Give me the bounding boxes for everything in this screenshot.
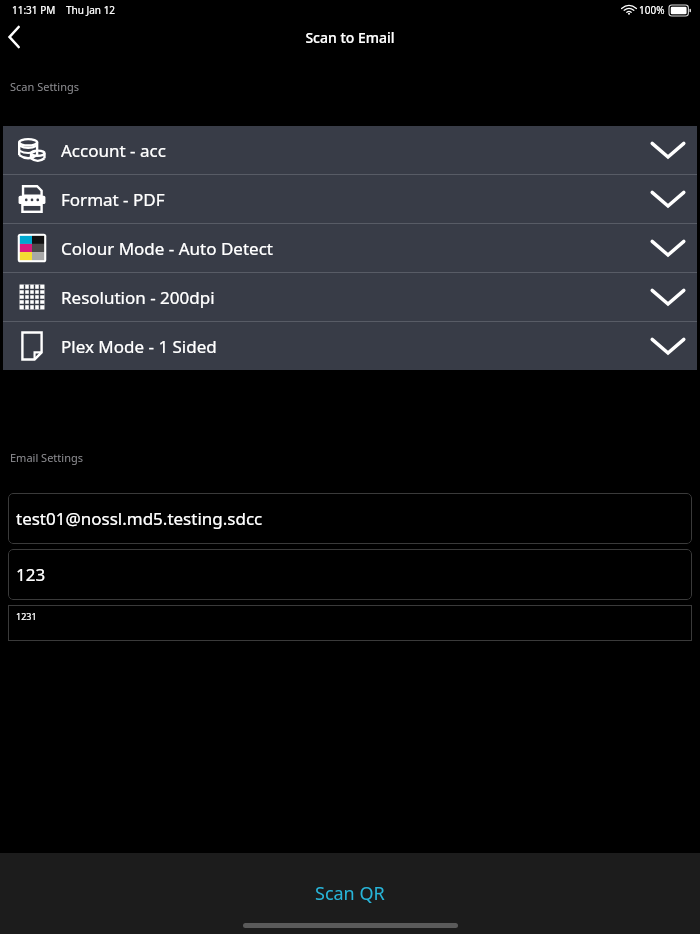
staticText: Email Settings [10, 450, 83, 465]
button[interactable]: Format - PDF [3, 175, 697, 223]
button[interactable]: Plex Mode - 1 Sided [3, 322, 697, 370]
button[interactable]: 123 [8, 549, 692, 600]
staticText: 100% [639, 3, 665, 17]
staticText: Thu Jan 12 [66, 3, 116, 17]
staticText: 11:31 PM [12, 3, 56, 17]
staticText: Resolution - 200dpi [61, 286, 215, 309]
button[interactable]: Resolution - 200dpi [3, 273, 697, 321]
staticText: 123 [16, 563, 46, 586]
staticText: Scan QR [315, 881, 385, 906]
button[interactable]: Scan QR [315, 881, 385, 906]
staticText: Scan to Email [305, 28, 395, 47]
button[interactable]: Back [0, 20, 36, 54]
staticText: 1231 [16, 610, 37, 622]
button[interactable]: Colour Mode - Auto Detect [3, 224, 697, 272]
staticText: Plex Mode - 1 Sided [61, 335, 217, 358]
staticText: test01@nossl.md5.testing.sdcc [16, 507, 263, 530]
button[interactable]: 1231 [8, 605, 692, 641]
staticText: Format - PDF [61, 188, 165, 211]
staticText: Scan Settings [10, 79, 80, 94]
staticText: Colour Mode - Auto Detect [61, 237, 273, 260]
button[interactable]: test01@nossl.md5.testing.sdcc [8, 493, 692, 544]
staticText: Account - acc [61, 139, 166, 162]
button[interactable]: Account - acc [3, 126, 697, 174]
